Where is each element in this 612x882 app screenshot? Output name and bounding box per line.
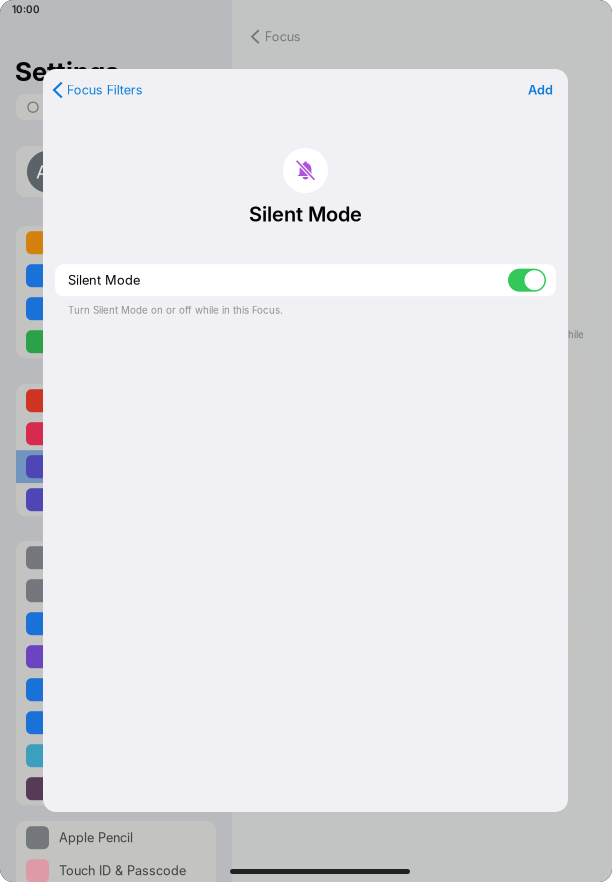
staticText: Bluetooth xyxy=(59,301,115,316)
button[interactable]: Silent Mode xyxy=(43,264,568,296)
staticText: Focus Filters xyxy=(67,82,143,98)
staticText: …while xyxy=(552,329,584,341)
staticText: AJ xyxy=(36,160,60,183)
button[interactable]: Focus Filters xyxy=(43,73,143,107)
staticText: Settings xyxy=(15,56,119,87)
staticText: Wi-Fi xyxy=(59,268,90,283)
staticText: Silent Mode xyxy=(249,202,362,226)
staticText: Silent Mode xyxy=(68,272,140,288)
staticText: 10:00 xyxy=(12,4,40,16)
staticText: Apple Pencil xyxy=(59,830,133,845)
staticText: Add xyxy=(528,82,553,98)
staticText: Touch ID & Passcode xyxy=(59,863,186,878)
staticText: Focus xyxy=(265,29,301,44)
staticText: Turn Silent Mode on or off while in this… xyxy=(68,304,283,316)
button[interactable]: Add xyxy=(528,73,568,107)
